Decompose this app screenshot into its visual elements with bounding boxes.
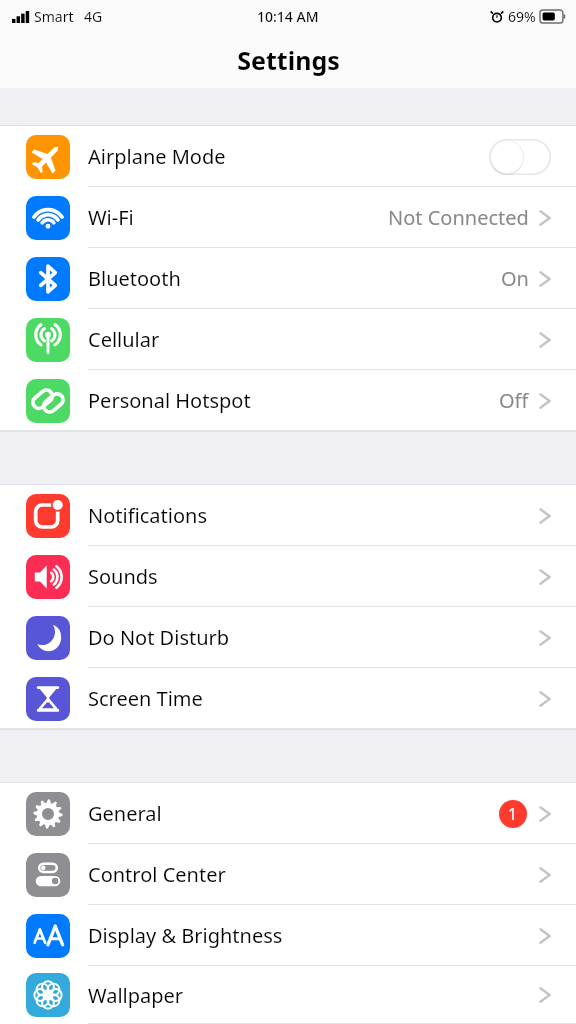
button[interactable]: Notifications <box>0 485 576 546</box>
button[interactable]: Wallpaper <box>0 966 576 1024</box>
button[interactable]: Airplane Mode toggle <box>489 139 551 175</box>
button[interactable]: Personal Hotspot <box>0 370 576 431</box>
staticText: Control Center <box>88 861 226 888</box>
staticText: Personal Hotspot <box>88 387 251 414</box>
staticText: Not Connected <box>388 204 529 231</box>
staticText: Sounds <box>88 563 158 590</box>
staticText: Wallpaper <box>88 982 184 1009</box>
staticText: 4G <box>84 7 103 26</box>
button[interactable]: Wi-Fi <box>0 187 576 248</box>
button[interactable]: Bluetooth <box>0 248 576 309</box>
staticText: Wi-Fi <box>88 204 134 231</box>
staticText: General <box>88 800 162 827</box>
staticText: Smart <box>34 7 74 26</box>
button[interactable]: Control Center <box>0 844 576 905</box>
button[interactable]: Sounds <box>0 546 576 607</box>
staticText: Off <box>499 387 529 414</box>
staticText: 1 <box>508 803 518 825</box>
staticText: Cellular <box>88 326 160 353</box>
staticText: Bluetooth <box>88 265 181 292</box>
staticText: Settings <box>237 43 340 77</box>
button[interactable]: General <box>0 783 576 844</box>
staticText: Screen Time <box>88 685 203 712</box>
staticText: Notifications <box>88 502 207 529</box>
button[interactable]: Airplane Mode <box>0 126 576 187</box>
button[interactable]: Display & Brightness <box>0 905 576 966</box>
staticText: 10:14 AM <box>257 7 319 26</box>
button[interactable]: Cellular <box>0 309 576 370</box>
staticText: Airplane Mode <box>88 143 226 170</box>
staticText: Display & Brightness <box>88 922 283 949</box>
button[interactable]: Do Not Disturb <box>0 607 576 668</box>
staticText: On <box>501 265 529 292</box>
button[interactable]: Screen Time <box>0 668 576 729</box>
staticText: Do Not Disturb <box>88 624 230 651</box>
staticText: 69% <box>508 7 536 26</box>
